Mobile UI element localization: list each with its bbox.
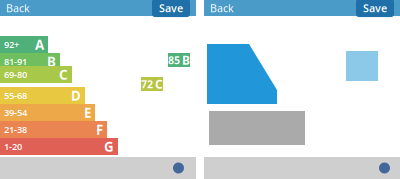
staticText: B (47, 53, 56, 70)
staticText: F (96, 121, 103, 138)
staticText: Save (363, 1, 387, 15)
button[interactable]: 69-80 (0, 70, 196, 87)
button[interactable]: Summary tab (379, 162, 400, 173)
button[interactable]: Save (152, 0, 196, 17)
button[interactable]: 55-68 (0, 87, 196, 104)
button[interactable]: 21-38 (0, 121, 196, 138)
staticText: D (71, 87, 81, 104)
staticText: 21-38 (4, 123, 27, 136)
button[interactable]: 92+ (0, 36, 196, 53)
staticText: C (59, 66, 68, 83)
staticText: 55-68 (4, 89, 27, 102)
button[interactable]: Save (356, 0, 400, 17)
button[interactable]: 1-20 (0, 138, 196, 155)
button[interactable]: 81-91 (0, 53, 196, 70)
button[interactable]: Property photo (207, 44, 277, 104)
staticText: 1-20 (4, 140, 22, 153)
staticText: C (155, 76, 163, 92)
staticText: B (182, 52, 190, 68)
staticText: 85 (168, 53, 180, 67)
staticText: Back (6, 1, 30, 15)
staticText: 81-91 (4, 55, 27, 68)
staticText: 72 (141, 77, 153, 91)
staticText: G (104, 138, 114, 155)
button[interactable]: 39-54 (0, 104, 196, 121)
staticText: A (35, 36, 44, 53)
staticText: 39-54 (4, 106, 27, 119)
staticText: 92+ (4, 38, 19, 51)
staticText: 69-80 (4, 68, 27, 81)
button[interactable]: Floor plan (346, 44, 400, 81)
button[interactable]: Back (204, 1, 234, 15)
staticText: E (84, 104, 91, 121)
staticText: Save (159, 1, 183, 15)
staticText: Back (210, 1, 234, 15)
button[interactable]: Summary tab (173, 162, 196, 173)
button[interactable]: Back (0, 1, 30, 15)
